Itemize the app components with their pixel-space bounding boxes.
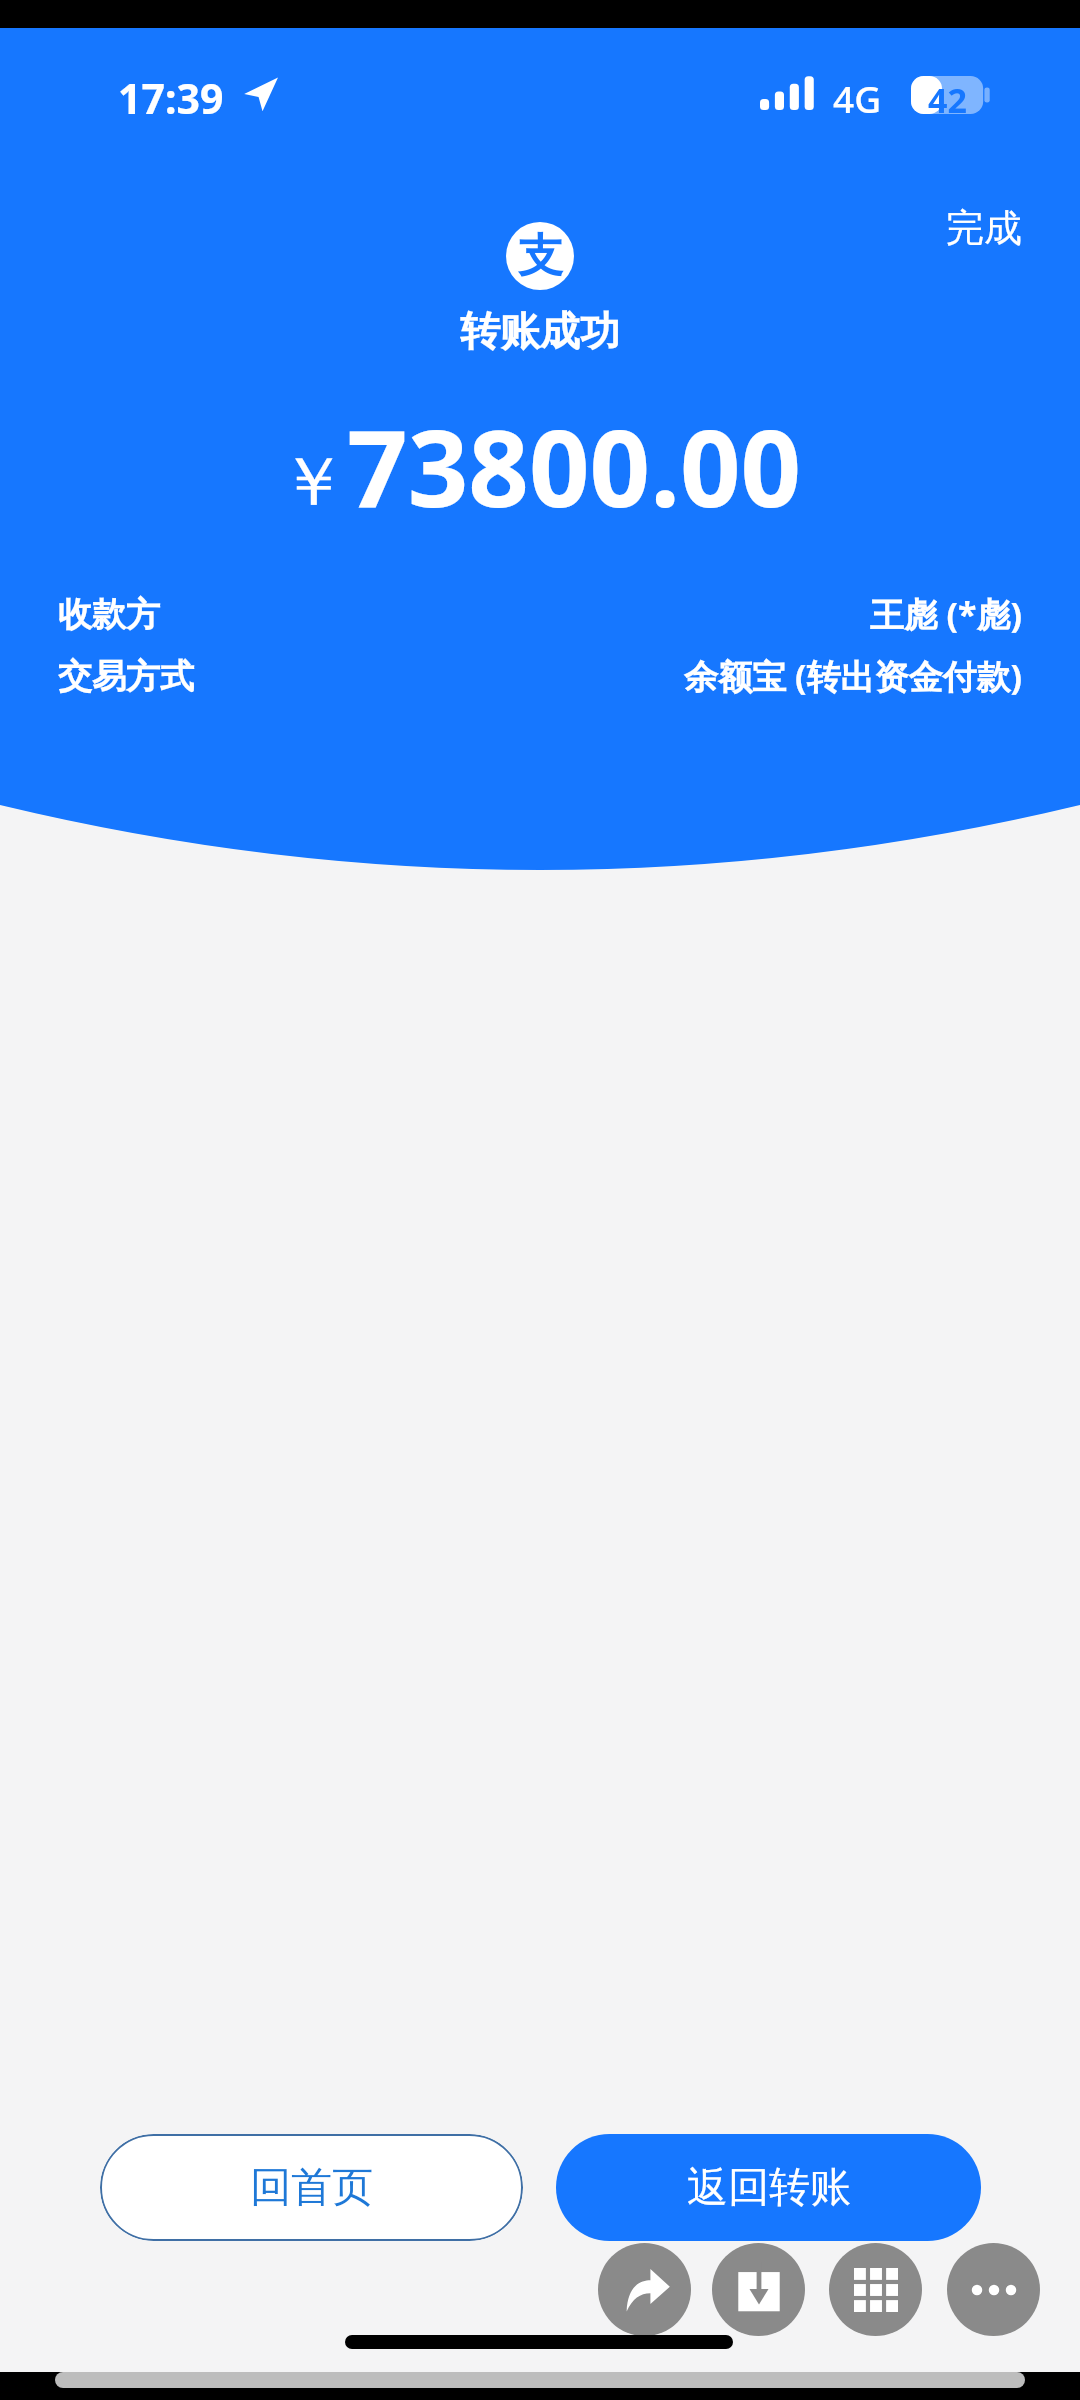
button[interactable]: More [947, 2243, 1040, 2336]
button[interactable]: Apps [829, 2243, 922, 2336]
staticText: 73800.00 [347, 394, 802, 538]
staticText: 完成 [946, 204, 1022, 252]
staticText: 42 [928, 77, 967, 123]
staticText: 王彪 (*彪) [869, 591, 1022, 637]
button[interactable]: 返回转账 [556, 2134, 981, 2241]
staticText: 交易方式 [58, 655, 194, 698]
staticText: 余额宝 (转出资金付款) [684, 653, 1022, 699]
button[interactable]: Share [598, 2243, 691, 2336]
staticText: 4G [833, 73, 882, 123]
staticText: 返回转账 [687, 2162, 851, 2214]
staticText: ￥ [279, 440, 347, 526]
staticText: 支 [518, 228, 563, 285]
staticText: 17:39 [118, 70, 224, 126]
staticText: 转账成功 [460, 306, 620, 356]
staticText: 回首页 [250, 2162, 373, 2214]
button[interactable]: 完成 [938, 196, 1030, 260]
staticText: 收款方 [58, 593, 160, 636]
button[interactable]: 回首页 [100, 2134, 523, 2241]
button[interactable]: Download [712, 2243, 805, 2336]
